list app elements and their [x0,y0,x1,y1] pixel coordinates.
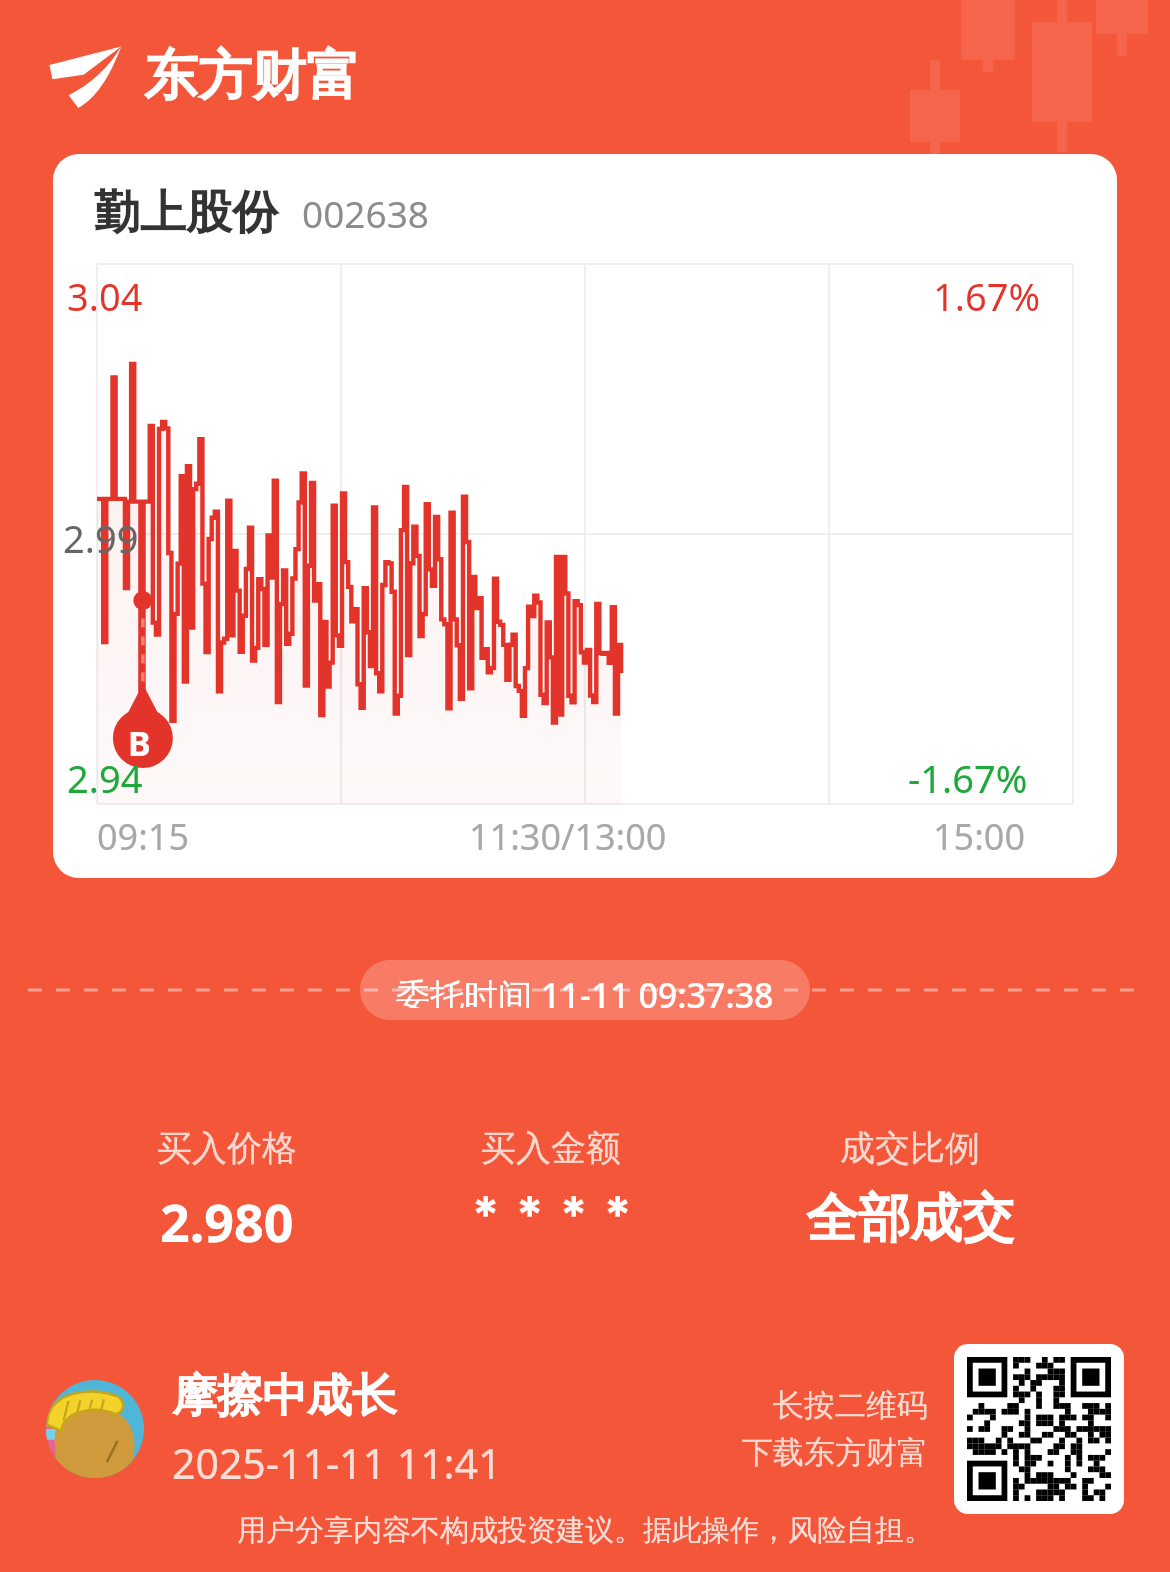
button[interactable]: East Money logo [48,42,360,110]
staticText: 2.99 [63,512,139,564]
staticText: 11:30/13:00 [469,812,667,861]
staticText: 勤上股份 [94,184,278,242]
staticText: -1.67% [908,752,1028,804]
staticText: 下载东方财富 [742,1433,928,1472]
button[interactable]: 委托时间 11-11 09:37:38 [360,960,810,1020]
button[interactable]: User avatar [46,1380,144,1478]
staticText: 2.980 [160,1186,294,1257]
staticText: ＊＊＊＊ [463,1186,639,1241]
staticText: 成交比例 [840,1126,980,1170]
staticText: 买入金额 [481,1126,621,1170]
staticText: 2.94 [67,752,143,804]
button[interactable]: 买入价格 [147,1126,307,1257]
button[interactable]: 成交比例 [796,1126,1024,1252]
staticText: 2025-11-11 11:41 [172,1435,502,1491]
staticText: 摩擦中成长 [172,1368,397,1425]
staticText: 东方财富 [144,42,360,110]
button[interactable]: 勤上股份 [53,154,1117,878]
staticText: 1.67% [933,270,1040,322]
staticText: 买入价格 [157,1126,297,1170]
staticText: 002638 [302,188,429,238]
staticText: 委托时间 11-11 09:37:38 [396,972,774,1008]
staticText: B [128,720,151,766]
button[interactable]: 买入金额 [453,1126,649,1241]
staticText: 用户分享内容不构成投资建议。据此操作，风险自担。 [237,1512,933,1549]
staticText: 15:00 [933,812,1026,861]
staticText: 3.04 [67,270,143,322]
staticText: 09:15 [97,812,190,861]
staticText: 长按二维码 [773,1386,928,1425]
staticText: 全部成交 [806,1186,1014,1252]
button[interactable]: QR code [954,1344,1124,1514]
